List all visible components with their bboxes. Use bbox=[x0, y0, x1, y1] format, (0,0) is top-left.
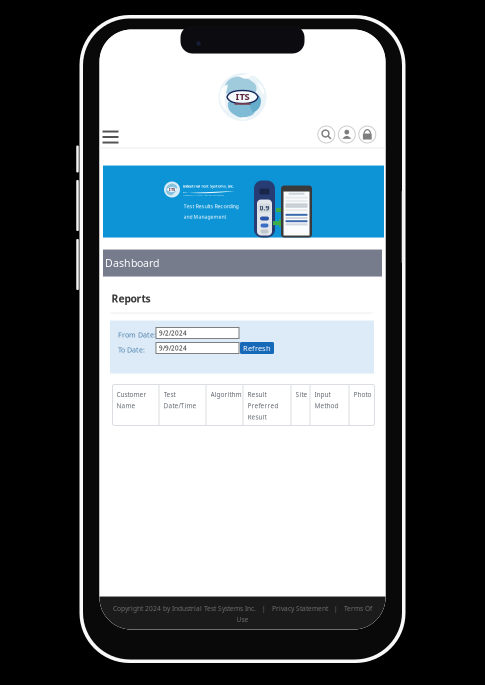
staticText: Site bbox=[295, 390, 307, 399]
staticText: Copyright 2024 by Industrial Test System… bbox=[113, 604, 256, 613]
staticText: Result bbox=[247, 390, 266, 399]
button[interactable]: Refresh bbox=[240, 342, 274, 354]
staticText: | bbox=[256, 604, 272, 613]
button[interactable]: Cart bbox=[358, 125, 377, 144]
staticText: Input bbox=[314, 390, 330, 399]
staticText: | bbox=[328, 604, 344, 613]
button[interactable]: Account bbox=[337, 125, 356, 144]
staticText: and Management bbox=[183, 213, 226, 220]
staticText: Innovators in Water Testing Instruments bbox=[183, 193, 224, 197]
staticText: 0.9 bbox=[259, 204, 269, 212]
staticText: Customer bbox=[116, 390, 146, 399]
staticText: From Date: bbox=[118, 330, 156, 340]
staticText: 9/2/2024 bbox=[159, 329, 187, 337]
button[interactable]: Terms Of bbox=[344, 604, 372, 613]
staticText: ITS bbox=[235, 90, 249, 103]
button[interactable]: Privacy Statement bbox=[272, 604, 328, 613]
staticText: Test bbox=[163, 390, 175, 399]
staticText: Use bbox=[236, 615, 248, 624]
staticText: 9/9/2024 bbox=[159, 344, 187, 352]
staticText: Terms Of bbox=[344, 604, 372, 613]
staticText: ITS bbox=[169, 187, 175, 192]
button[interactable]: Menu bbox=[97, 125, 123, 148]
staticText: Industrial Test Systems, Inc. bbox=[183, 183, 234, 189]
staticText: Privacy Statement bbox=[272, 604, 328, 613]
staticText: Photo bbox=[353, 390, 371, 399]
staticText: Preferred bbox=[247, 401, 278, 410]
staticText: Date/Time bbox=[163, 401, 196, 410]
staticText: Reports bbox=[111, 291, 150, 305]
staticText: Algorithm bbox=[210, 390, 241, 399]
staticText: Result bbox=[247, 413, 266, 421]
staticText: Refresh bbox=[243, 343, 271, 353]
staticText: Method bbox=[314, 401, 338, 410]
button[interactable]: Search bbox=[317, 125, 336, 144]
staticText: Test Results Recording bbox=[183, 202, 238, 210]
staticText: Dashboard bbox=[105, 256, 159, 270]
staticText: To Date: bbox=[118, 345, 145, 355]
staticText: Name bbox=[116, 401, 135, 410]
button[interactable]: Use bbox=[236, 615, 248, 624]
